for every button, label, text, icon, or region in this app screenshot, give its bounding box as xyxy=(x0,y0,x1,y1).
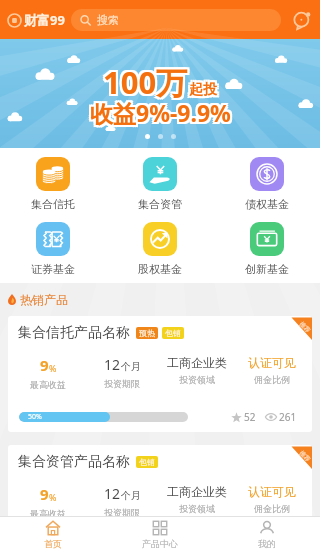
staticText: 100万 xyxy=(105,61,190,103)
button[interactable]: 集合信托 xyxy=(0,157,106,212)
staticText: 我的 xyxy=(258,538,276,549)
staticText: 收益9%-9.9% xyxy=(90,99,231,130)
button[interactable]: 证券基金 xyxy=(0,222,106,277)
staticText: 认证可见 xyxy=(248,484,296,499)
staticText: 起投 xyxy=(191,81,219,99)
staticText: 收益9%-9.9% xyxy=(90,97,231,128)
staticText: 起投 xyxy=(187,81,215,99)
button[interactable]: 首页 xyxy=(0,517,106,552)
staticText: 50% xyxy=(28,412,42,422)
staticText: 100万 xyxy=(103,59,188,101)
button[interactable] xyxy=(8,316,312,432)
button[interactable] xyxy=(8,445,312,552)
staticText: 热销产品 xyxy=(20,292,68,307)
staticText: 最高收益 xyxy=(30,379,66,390)
staticText: 个月 xyxy=(121,489,141,502)
staticText: 财富99 xyxy=(24,11,65,29)
staticText: 股权基金 xyxy=(138,262,182,276)
staticText: 100万 xyxy=(101,63,186,105)
staticText: 创新基金 xyxy=(245,262,289,276)
staticText: 收益9%-9.9% xyxy=(92,97,233,128)
staticText: 证券基金 xyxy=(31,262,75,276)
button[interactable]: Messages xyxy=(287,5,317,35)
staticText: 包销 xyxy=(165,328,181,338)
staticText: 261 xyxy=(279,410,297,424)
staticText: 起投 xyxy=(187,79,215,97)
staticText: 12 xyxy=(104,484,121,503)
staticText: 起投 xyxy=(187,83,215,101)
staticText: 收益9%-9.9% xyxy=(88,99,229,130)
button[interactable]: 财富99 xyxy=(7,7,65,33)
staticText: 债权基金 xyxy=(245,197,289,211)
staticText: 收益9%-9.9% xyxy=(90,95,231,126)
staticText: 起投 xyxy=(191,83,219,101)
staticText: 100万 xyxy=(101,61,186,103)
staticText: 收益9%-9.9% xyxy=(88,97,229,128)
staticText: 佣金比例 xyxy=(254,374,290,385)
staticText: 9 xyxy=(40,355,49,375)
staticText: 预热 xyxy=(139,328,155,338)
staticText: 集合资管产品名称 xyxy=(18,453,130,471)
staticText: 最高收益 xyxy=(30,508,66,519)
staticText: 产品中心 xyxy=(142,538,178,549)
staticText: 起投 xyxy=(189,81,217,99)
staticText: 推荐 xyxy=(298,320,312,334)
button[interactable]: 债权基金 xyxy=(213,157,320,212)
staticText: 集合信托 xyxy=(31,197,75,211)
button[interactable]: 集合资管 xyxy=(106,157,213,212)
staticText: 起投 xyxy=(191,79,219,97)
staticText: 起投 xyxy=(189,79,217,97)
staticText: 收益9%-9.9% xyxy=(88,95,229,126)
staticText: % xyxy=(49,362,57,374)
staticText: 9 xyxy=(40,484,49,504)
staticText: 100万 xyxy=(105,59,190,101)
staticText: 工商企业类 xyxy=(167,355,227,370)
staticText: 100万 xyxy=(101,59,186,101)
button[interactable]: 股权基金 xyxy=(106,222,213,277)
staticText: 52 xyxy=(244,410,256,424)
staticText: 工商企业类 xyxy=(167,484,227,499)
button[interactable]: 产品中心 xyxy=(106,517,213,552)
staticText: 佣金比例 xyxy=(254,503,290,514)
staticText: 起投 xyxy=(189,83,217,101)
button[interactable]: 我的 xyxy=(213,517,320,552)
staticText: 个月 xyxy=(121,360,141,373)
staticText: 投资领域 xyxy=(179,374,215,385)
staticText: 投资期限 xyxy=(104,378,140,389)
staticText: 100万 xyxy=(103,63,188,105)
button[interactable]: 搜索 xyxy=(71,9,281,31)
staticText: % xyxy=(49,491,57,503)
staticText: 认证可见 xyxy=(248,355,296,370)
staticText: 12 xyxy=(104,355,121,374)
staticText: 包销 xyxy=(139,457,155,467)
staticText: 投资领域 xyxy=(179,503,215,514)
button[interactable]: 创新基金 xyxy=(213,222,320,277)
staticText: 集合信托产品名称 xyxy=(18,324,130,342)
staticText: 收益9%-9.9% xyxy=(92,99,233,130)
staticText: 100万 xyxy=(103,61,188,103)
staticText: 集合资管 xyxy=(138,197,182,211)
staticText: 投资期限 xyxy=(104,507,140,518)
staticText: 首页 xyxy=(44,538,62,549)
staticText: 100万 xyxy=(105,63,190,105)
staticText: 搜索 xyxy=(97,13,119,27)
staticText: 推荐 xyxy=(298,449,312,463)
staticText: 收益9%-9.9% xyxy=(92,95,233,126)
